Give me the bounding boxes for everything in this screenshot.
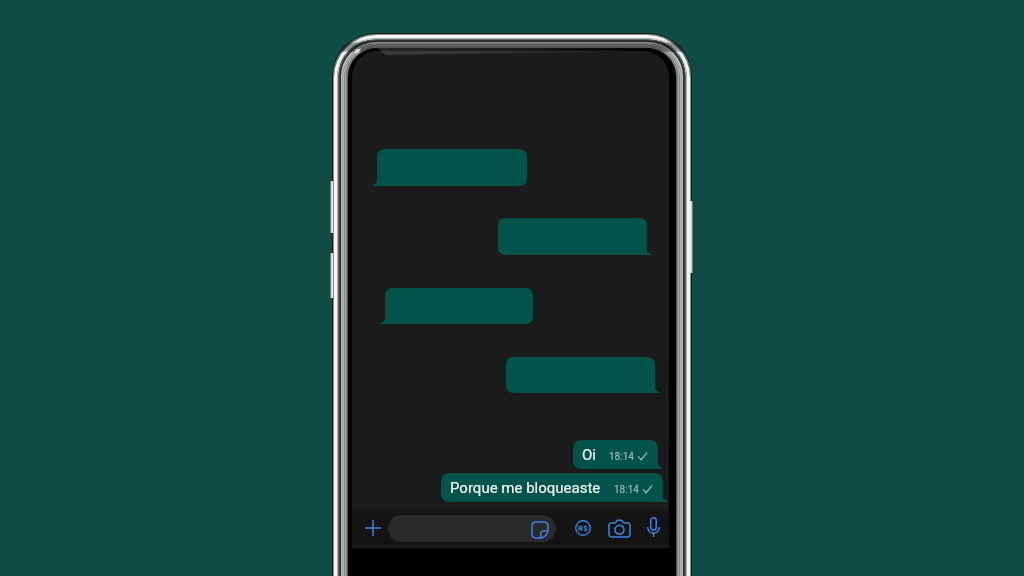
button[interactable]: Attach	[359, 514, 387, 542]
button[interactable]	[506, 357, 660, 393]
button[interactable]	[380, 288, 533, 324]
button[interactable]: Porque me bloqueaste	[441, 473, 663, 502]
staticText: 18:14	[609, 451, 634, 463]
button[interactable]: Payments	[570, 515, 596, 541]
button[interactable]	[372, 149, 527, 186]
button[interactable]	[388, 515, 556, 542]
button[interactable]	[498, 218, 652, 255]
button[interactable]: Camera	[606, 515, 632, 541]
staticText: Porque me bloqueaste	[450, 479, 601, 497]
button[interactable]: Oi	[573, 440, 658, 469]
staticText: 18:14	[614, 484, 639, 496]
staticText: Oi	[582, 446, 596, 464]
button[interactable]: Voice message	[640, 514, 666, 540]
staticText: R$	[578, 524, 588, 533]
